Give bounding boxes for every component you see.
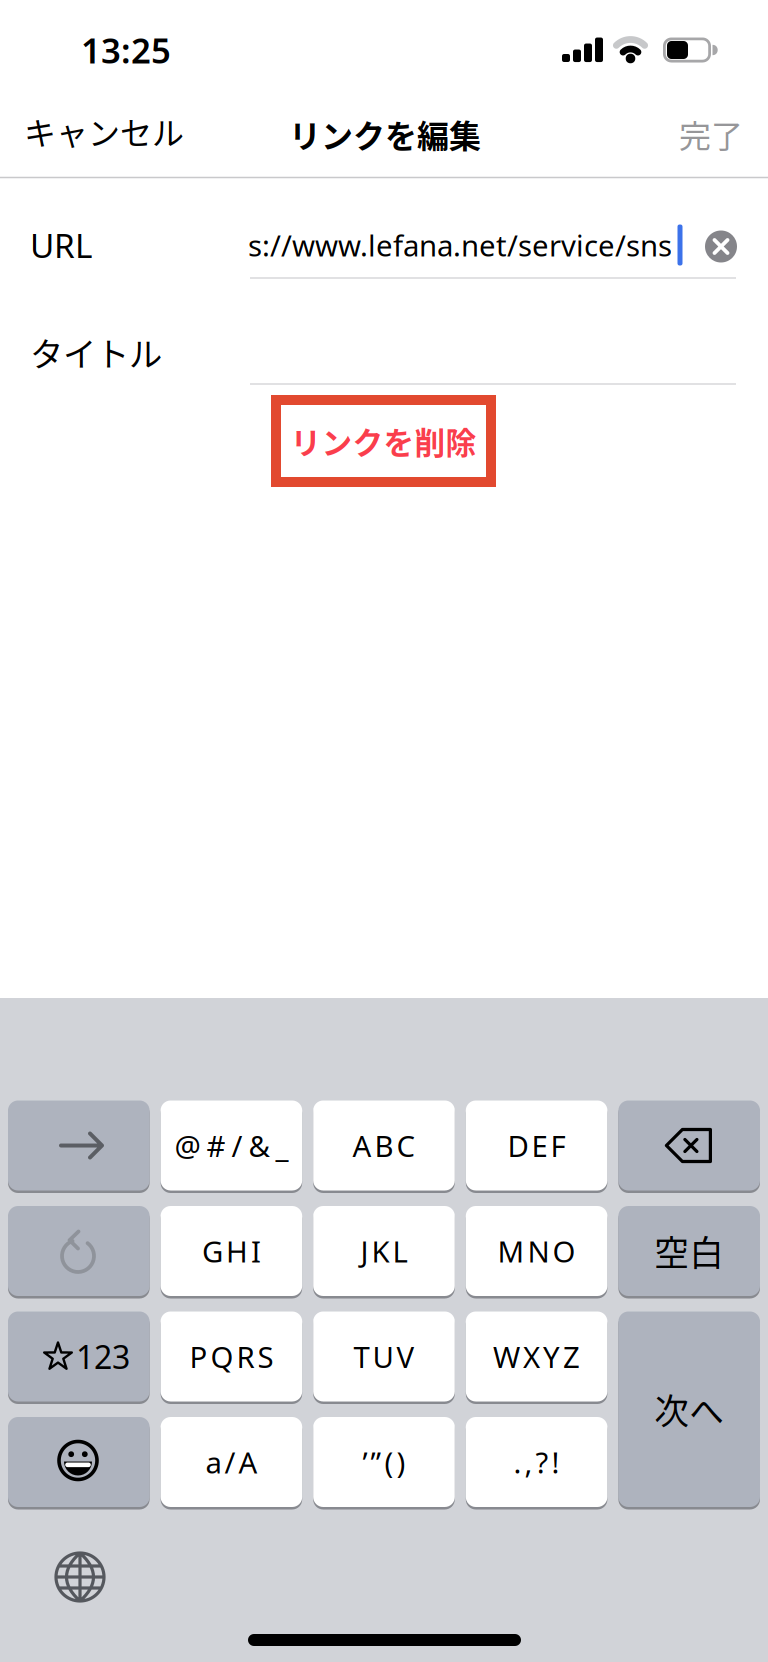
staticText: ’”() bbox=[362, 1442, 405, 1481]
button[interactable]: 元に戻す bbox=[8, 1206, 150, 1296]
staticText: .,?! bbox=[514, 1442, 560, 1481]
staticText: 13:25 bbox=[81, 27, 171, 73]
button[interactable]: 削除 bbox=[618, 1100, 760, 1190]
staticText: リンクを削除 bbox=[290, 419, 476, 463]
staticText: PQRS bbox=[189, 1337, 273, 1376]
button[interactable]: テキストを消去 bbox=[705, 230, 737, 262]
staticText: キャンセル bbox=[24, 108, 184, 154]
staticText: a/A bbox=[205, 1442, 257, 1481]
button[interactable]: カーソルを移動 bbox=[8, 1100, 150, 1190]
button[interactable]: リンクを削除 bbox=[271, 395, 496, 487]
staticText: リンクを編集 bbox=[289, 111, 481, 157]
button[interactable]: @#/&_ bbox=[161, 1100, 302, 1190]
button[interactable]: MNO bbox=[466, 1206, 607, 1296]
button[interactable]: 次のキーボード bbox=[50, 1547, 110, 1607]
staticText: ABC bbox=[352, 1126, 415, 1165]
staticText: 完了 bbox=[679, 111, 743, 157]
button[interactable]: 123 bbox=[8, 1311, 150, 1401]
button[interactable]: 空白 bbox=[618, 1206, 760, 1296]
button[interactable]: DEF bbox=[466, 1100, 607, 1190]
button[interactable]: ABC bbox=[313, 1100, 455, 1190]
button[interactable]: 絵文字 bbox=[8, 1417, 150, 1507]
staticText: タイトル bbox=[30, 328, 162, 376]
staticText: 次へ bbox=[654, 1384, 724, 1434]
staticText: GHI bbox=[202, 1231, 261, 1270]
button[interactable]: GHI bbox=[161, 1206, 302, 1296]
button[interactable]: .,?! bbox=[466, 1417, 607, 1507]
button[interactable]: WXYZ bbox=[466, 1311, 607, 1401]
staticText: TUV bbox=[353, 1337, 414, 1376]
button[interactable]: JKL bbox=[313, 1206, 455, 1296]
staticText: s://www.lefana.net/service/sns bbox=[248, 225, 672, 264]
button[interactable]: PQRS bbox=[161, 1311, 302, 1401]
staticText: @#/&_ bbox=[174, 1126, 288, 1165]
button[interactable]: TUV bbox=[313, 1311, 455, 1401]
button[interactable]: キャンセル bbox=[24, 108, 184, 154]
button[interactable]: URL bbox=[250, 216, 690, 276]
staticText: DEF bbox=[508, 1126, 566, 1165]
staticText: 空白 bbox=[654, 1226, 724, 1276]
button[interactable]: ’”() bbox=[313, 1417, 455, 1507]
staticText: JKL bbox=[360, 1231, 407, 1270]
button[interactable]: 次へ bbox=[618, 1311, 760, 1507]
button[interactable]: a/A bbox=[161, 1417, 302, 1507]
staticText: WXYZ bbox=[493, 1337, 580, 1376]
button[interactable]: 完了 bbox=[679, 111, 743, 157]
staticText: 123 bbox=[76, 1335, 130, 1378]
staticText: MNO bbox=[498, 1231, 576, 1270]
staticText: URL bbox=[30, 223, 92, 267]
